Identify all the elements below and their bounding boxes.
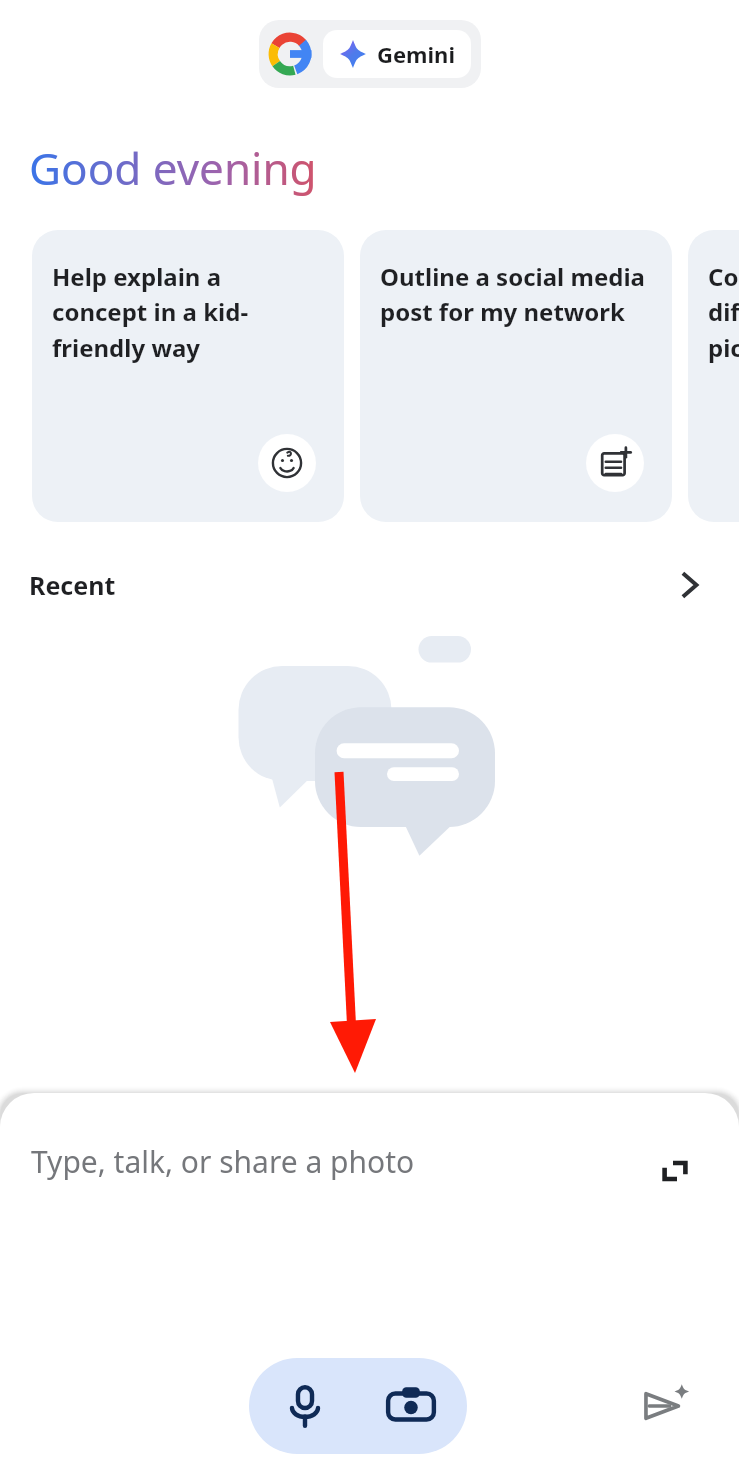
button[interactable]: Come up with different picture	[688, 230, 739, 522]
button[interactable]: Camera	[385, 1380, 437, 1432]
staticText: Good evening	[29, 138, 317, 198]
button[interactable]: Recent	[0, 552, 739, 618]
staticText: Recent	[29, 568, 116, 602]
staticText: Gemini	[377, 39, 455, 69]
staticText: Help explain a concept in a kid- friendl…	[52, 260, 249, 364]
other: Expand input	[655, 1151, 695, 1191]
button[interactable]: Type, talk, or share a photo	[0, 1093, 739, 1233]
staticText: Outline a social media post for my netwo…	[380, 260, 645, 328]
button[interactable]: Gemini	[323, 30, 471, 78]
button[interactable]: Voice input	[249, 1358, 467, 1454]
button[interactable]: Send	[637, 1378, 693, 1434]
button[interactable]	[258, 434, 316, 492]
other: See all recent	[670, 565, 710, 605]
button[interactable]: Gemini	[259, 20, 481, 88]
button[interactable]	[586, 434, 644, 492]
staticText: Come up with different picture	[708, 260, 739, 364]
staticText: Type, talk, or share a photo	[31, 1141, 415, 1182]
button[interactable]: Outline a social media post for my netwo…	[360, 230, 672, 522]
button[interactable]: Voice input	[279, 1380, 331, 1432]
button[interactable]: Help explain a concept in a kid- friendl…	[32, 230, 344, 522]
